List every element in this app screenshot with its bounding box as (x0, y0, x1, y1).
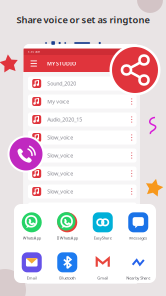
staticText: Bluetooth (59, 275, 75, 281)
staticText: Share voice or set as ringtone (16, 13, 149, 26)
staticText: EasyShare (94, 235, 112, 241)
button[interactable]: II WhatsApp (49, 209, 85, 243)
staticText: Email (27, 275, 37, 281)
button[interactable]: Slow_voice (28, 148, 136, 162)
button[interactable]: Viber (7, 135, 44, 172)
staticText: Slow_voice (47, 206, 73, 213)
button[interactable]: Slow_voice (28, 184, 136, 198)
button[interactable]: Nearby Share (120, 249, 156, 283)
staticText: Gmail (97, 275, 108, 281)
button[interactable]: Slow_voice (28, 166, 136, 180)
button[interactable]: Gmail (85, 249, 120, 283)
button[interactable]: Share (109, 44, 160, 95)
button[interactable]: EasyShare (85, 209, 120, 243)
button[interactable]: Slow_voice (28, 130, 136, 144)
button[interactable]: Sound_2020 (28, 76, 136, 90)
staticText: Slow_voice (47, 170, 73, 177)
staticText: WhatsApp (23, 235, 41, 241)
button[interactable]: My voice (28, 94, 136, 108)
button[interactable]: Slow_voice (28, 202, 136, 216)
staticText: Slow_voice (47, 188, 73, 195)
staticText: My voice (47, 98, 69, 105)
staticText: 9:30 AM (27, 50, 39, 53)
staticText: Slow_voice (47, 134, 73, 141)
staticText: II WhatsApp (57, 235, 78, 241)
staticText: Sound_2020 (47, 80, 76, 87)
button[interactable]: Messages (120, 209, 156, 243)
button[interactable]: Bluetooth (49, 249, 85, 283)
staticText: Nearby Share (126, 275, 150, 281)
staticText: Messages (129, 235, 147, 241)
button[interactable]: Audio_2020_15 (28, 112, 136, 126)
staticText: MY STUDIO (47, 60, 76, 67)
button[interactable]: WhatsApp (14, 209, 49, 243)
button[interactable]: Email (14, 249, 49, 283)
staticText: Audio_2020_15 (47, 116, 82, 123)
staticText: Slow_voice (47, 152, 73, 159)
